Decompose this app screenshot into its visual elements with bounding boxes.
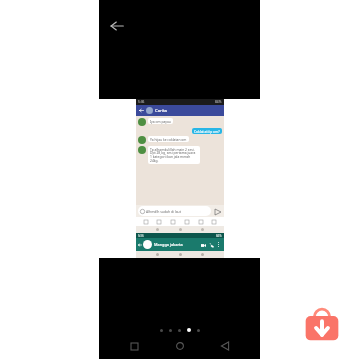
button[interactable]: Ya hijau ke coklatan om [148,136,189,142]
button[interactable]: More options [215,241,222,248]
staticText: 5:36 [138,234,144,238]
button[interactable]: Attachment option [155,218,163,226]
button[interactable]: Mangga jakarta [136,238,224,251]
button[interactable]: Attachment option [183,218,191,226]
button[interactable]: Attachment option [197,218,205,226]
staticText: 84% [216,234,222,238]
button[interactable]: Voice call [207,241,215,249]
button[interactable]: Carita [136,105,224,116]
button[interactable]: Tp alhamdulillah main 2 sesi. Dpt 28,kg,… [148,146,200,164]
button[interactable]: Home [169,335,191,357]
button[interactable]: Alhmdlh sudah di laut [138,206,211,216]
button[interactable]: Iya om payau [148,118,173,124]
staticText: Iya om payau [150,119,171,123]
staticText: 5:36 [138,100,145,104]
staticText: Alhmdlh sudah di laut [146,209,181,214]
staticText: Tp alhamdulillah main 2 sesi. Dpt 28,kg,… [150,147,198,163]
button[interactable]: Coklat ati ip om? [192,128,222,134]
button[interactable]: Attachment option [210,218,218,226]
button[interactable]: Download [301,303,343,345]
staticText: Coklat ati ip om? [194,129,220,133]
button[interactable]: Attachment option [142,218,150,226]
button[interactable]: Back [103,12,131,40]
button[interactable]: Video call [199,241,207,249]
button[interactable]: Attachment option [169,218,177,226]
button[interactable]: Send [213,207,222,216]
button[interactable]: Back [214,335,236,357]
staticText: Ya hijau ke coklatan om [150,137,187,141]
button[interactable]: Recents [123,335,145,357]
staticText: Carita [155,108,167,114]
staticText: Mangga jakarta [154,242,183,247]
staticText: 84% [215,100,222,104]
